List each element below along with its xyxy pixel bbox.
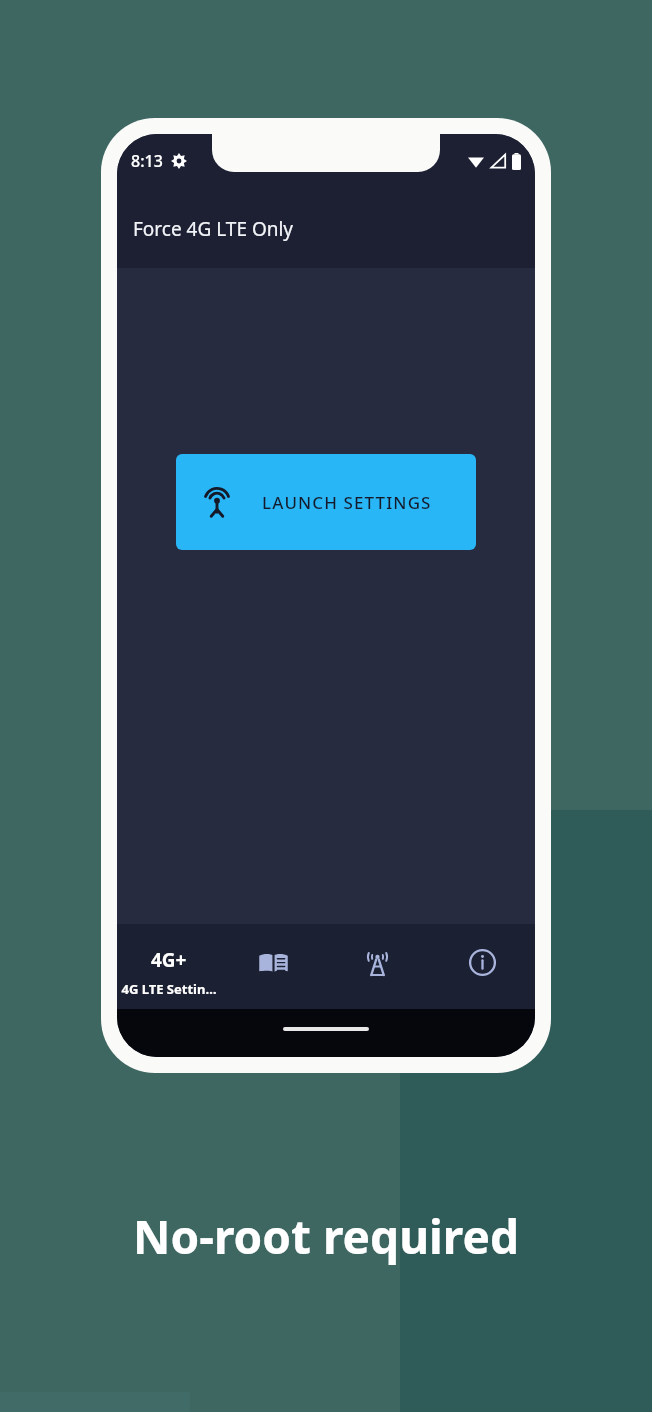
- staticText: 8:13: [131, 150, 163, 172]
- button[interactable]: Guide: [221, 924, 325, 1009]
- button[interactable]: 4G+: [117, 924, 221, 1009]
- button[interactable]: About: [430, 924, 535, 1009]
- staticText: 4G+: [151, 947, 187, 973]
- staticText: 4G LTE Settin…: [121, 980, 217, 998]
- button[interactable]: Network: [325, 924, 430, 1009]
- button[interactable]: LAUNCH SETTINGS: [176, 454, 476, 550]
- staticText: No-root required: [0, 1205, 652, 1268]
- staticText: LAUNCH SETTINGS: [262, 491, 432, 514]
- staticText: Force 4G LTE Only: [133, 216, 294, 242]
